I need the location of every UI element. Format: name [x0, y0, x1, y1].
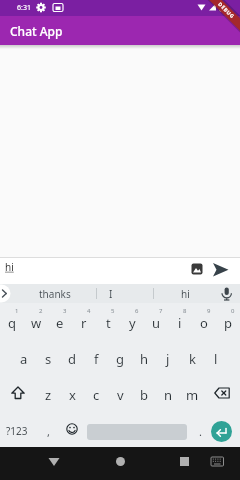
staticText: w — [31, 314, 42, 332]
staticText: q — [8, 314, 16, 332]
button[interactable] — [0, 375, 36, 411]
staticText: 2 — [39, 307, 43, 315]
staticText: Chat App — [10, 23, 63, 39]
staticText: g — [116, 350, 124, 368]
staticText: k — [189, 350, 196, 368]
button[interactable]: g — [108, 339, 132, 375]
staticText: DEBUG — [216, 1, 236, 21]
staticText: n — [164, 386, 173, 404]
staticText: 6:31 — [17, 3, 31, 13]
button[interactable]: e — [48, 303, 72, 339]
staticText: , — [47, 424, 50, 439]
button[interactable] — [168, 447, 200, 480]
button[interactable]: t — [96, 303, 120, 339]
button[interactable] — [104, 447, 136, 480]
button[interactable]: . — [188, 411, 212, 447]
staticText: hi — [181, 287, 190, 301]
button[interactable]: w — [24, 303, 48, 339]
staticText: 4 — [87, 307, 91, 315]
button[interactable]: v — [108, 375, 132, 411]
button[interactable] — [211, 421, 232, 442]
button[interactable]: ?123 — [0, 411, 33, 447]
button[interactable]: r — [72, 303, 96, 339]
button[interactable]: b — [132, 375, 156, 411]
staticText: 1 — [15, 307, 19, 315]
staticText: 7 — [159, 307, 163, 315]
button[interactable]: thanks — [20, 284, 90, 303]
button[interactable] — [205, 447, 230, 480]
staticText: s — [45, 350, 52, 368]
staticText: d — [68, 350, 76, 368]
staticText: l — [214, 350, 218, 368]
staticText: thanks — [39, 287, 71, 301]
staticText: o — [200, 314, 208, 332]
button[interactable]: f — [84, 339, 108, 375]
button[interactable]: n — [156, 375, 180, 411]
staticText: 0 — [231, 307, 235, 315]
button[interactable]: c — [84, 375, 108, 411]
staticText: 9 — [207, 307, 211, 315]
button[interactable]: h — [132, 339, 156, 375]
staticText: h — [140, 350, 149, 368]
staticText: t — [106, 314, 111, 332]
button[interactable]: l — [204, 339, 228, 375]
staticText: c — [93, 386, 100, 404]
button[interactable]: m — [180, 375, 204, 411]
staticText: a — [20, 350, 28, 368]
staticText: hi — [5, 260, 14, 274]
button[interactable] — [60, 411, 84, 447]
button[interactable]: i — [168, 303, 192, 339]
button[interactable]: j — [156, 339, 180, 375]
staticText: y — [129, 314, 136, 332]
staticText: i — [178, 314, 182, 332]
staticText: p — [224, 314, 232, 332]
staticText: z — [45, 386, 52, 404]
button[interactable]: u — [144, 303, 168, 339]
staticText: e — [56, 314, 64, 332]
button[interactable]: o — [192, 303, 216, 339]
button[interactable]: d — [60, 339, 84, 375]
button[interactable] — [185, 259, 207, 282]
button[interactable]: x — [60, 375, 84, 411]
button[interactable]: a — [12, 339, 36, 375]
staticText: 8 — [183, 307, 187, 315]
staticText: x — [69, 386, 76, 404]
button[interactable]: y — [120, 303, 144, 339]
button[interactable] — [208, 259, 232, 282]
staticText: . — [199, 424, 202, 439]
button[interactable] — [204, 375, 240, 411]
staticText: ?123 — [6, 424, 28, 438]
button[interactable]: hi — [155, 284, 215, 303]
staticText: I — [109, 287, 113, 301]
staticText: 5 — [111, 307, 115, 315]
staticText: 3 — [63, 307, 67, 315]
button[interactable] — [216, 284, 240, 303]
staticText: j — [166, 350, 170, 368]
staticText: 6 — [135, 307, 139, 315]
button[interactable]: I — [97, 284, 125, 303]
button[interactable] — [38, 447, 70, 480]
button[interactable] — [0, 284, 16, 303]
button[interactable]: k — [180, 339, 204, 375]
staticText: b — [140, 386, 148, 404]
button[interactable]: , — [36, 411, 60, 447]
staticText: u — [152, 314, 161, 332]
staticText: m — [186, 386, 199, 404]
button[interactable]: s — [36, 339, 60, 375]
staticText: f — [94, 350, 99, 368]
button[interactable]: z — [36, 375, 60, 411]
staticText: v — [117, 386, 124, 404]
staticText: r — [81, 314, 87, 332]
button[interactable]: q — [0, 303, 24, 339]
button[interactable]: p — [216, 303, 240, 339]
